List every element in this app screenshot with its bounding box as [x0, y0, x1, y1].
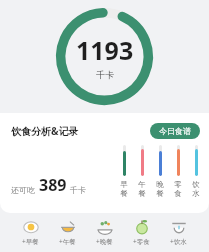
- button[interactable]: 添加午餐: [57, 219, 78, 246]
- staticText: 还可吃: [11, 185, 35, 195]
- staticText: 午: [138, 180, 146, 189]
- staticText: +早餐: [22, 237, 39, 246]
- staticText: 389: [39, 174, 67, 196]
- staticText: 饮食分析&记录: [11, 124, 79, 138]
- staticText: +午餐: [59, 237, 76, 246]
- staticText: +零食: [133, 237, 150, 246]
- button[interactable]: 今日摄入 1193 千卡: [56, 8, 153, 105]
- staticText: 餐: [138, 189, 146, 198]
- staticText: 今日食谱: [159, 126, 191, 136]
- staticText: 千卡: [96, 69, 114, 80]
- staticText: 餐: [120, 189, 128, 198]
- staticText: 早: [120, 180, 128, 189]
- staticText: 饮: [192, 180, 200, 189]
- staticText: 水: [192, 189, 200, 198]
- staticText: 1193: [76, 33, 134, 67]
- button[interactable]: 添加晚餐: [94, 219, 115, 246]
- button[interactable]: 早: [120, 145, 128, 198]
- button[interactable]: 零: [174, 145, 182, 198]
- button[interactable]: 晚: [156, 145, 164, 198]
- button[interactable]: 添加早餐: [20, 219, 41, 246]
- staticText: 餐: [156, 189, 164, 198]
- button[interactable]: 添加零食: [131, 219, 152, 246]
- button[interactable]: 今日食谱: [150, 123, 200, 139]
- staticText: 零: [174, 180, 182, 189]
- button[interactable]: 饮: [192, 145, 200, 198]
- staticText: 晚: [156, 180, 164, 189]
- staticText: +晚餐: [96, 237, 113, 246]
- staticText: +饮水: [170, 237, 187, 246]
- button[interactable]: 午: [138, 145, 146, 198]
- staticText: 千卡: [70, 185, 86, 195]
- staticText: 食: [174, 189, 182, 198]
- button[interactable]: 添加饮水: [168, 219, 189, 246]
